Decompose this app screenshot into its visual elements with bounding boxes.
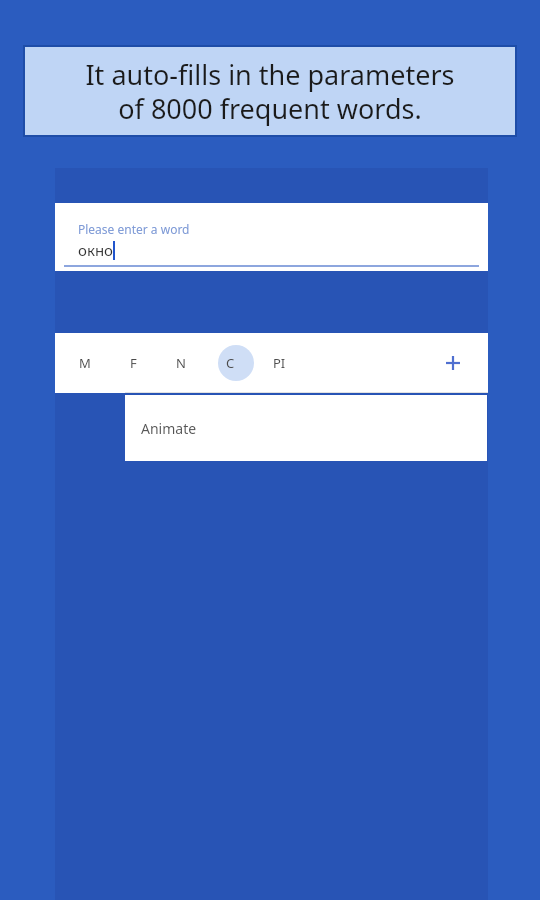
staticText: окно (78, 240, 113, 260)
button[interactable]: M (67, 345, 103, 381)
staticText: PI (273, 354, 286, 372)
button[interactable]: PI (261, 345, 297, 381)
button[interactable]: Please enter a word (55, 203, 488, 271)
button[interactable]: Add (435, 345, 471, 381)
staticText: C (226, 354, 235, 372)
staticText: N (176, 354, 186, 372)
button[interactable]: C (212, 345, 248, 381)
staticText: Animate (141, 419, 197, 438)
button[interactable]: F (115, 345, 151, 381)
button[interactable]: N (163, 345, 199, 381)
staticText: M (79, 354, 91, 372)
staticText: Please enter a word (78, 221, 190, 237)
button[interactable]: Animate (125, 395, 487, 461)
staticText: It auto-fills in the parameters of 8000 … (85, 56, 455, 127)
staticText: F (130, 354, 137, 372)
